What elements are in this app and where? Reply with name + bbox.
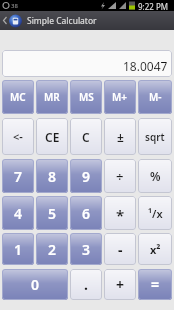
button[interactable]: ¹/x <box>138 196 172 230</box>
staticText: M+ <box>112 90 128 104</box>
button[interactable]: MR <box>36 80 68 114</box>
staticText: 18.0047 <box>123 58 168 74</box>
button[interactable]: 0 <box>2 269 68 300</box>
button[interactable]: Simple Calculator <box>0 11 174 30</box>
button[interactable]: 1 <box>2 233 34 265</box>
staticText: Simple Calculator <box>27 15 97 27</box>
staticText: x² <box>150 242 161 257</box>
button[interactable]: * <box>104 196 136 230</box>
button[interactable]: MS <box>70 80 102 114</box>
staticText: MC <box>10 90 26 104</box>
staticText: 6 <box>82 204 91 223</box>
button[interactable]: 3 <box>70 233 102 265</box>
staticText: <- <box>13 129 23 144</box>
staticText: = <box>151 275 160 294</box>
staticText: 9:22 PM <box>138 1 169 12</box>
staticText: - <box>118 240 123 259</box>
staticText: 0 <box>31 275 40 294</box>
button[interactable]: 2 <box>36 233 68 265</box>
button[interactable]: . <box>70 269 102 300</box>
button[interactable]: CE <box>36 118 68 155</box>
staticText: 9 <box>82 167 91 186</box>
staticText: MR <box>44 90 60 104</box>
staticText: ± <box>117 129 124 145</box>
staticText: * <box>116 205 125 225</box>
button[interactable]: 8 <box>36 159 68 193</box>
staticText: 38 <box>11 2 18 10</box>
staticText: . <box>84 275 88 294</box>
staticText: sqrt <box>145 130 165 144</box>
button[interactable]: ÷ <box>104 159 136 193</box>
button[interactable]: M- <box>138 80 172 114</box>
staticText: 1 <box>14 240 23 259</box>
staticText: M- <box>149 90 162 104</box>
button[interactable]: - <box>104 233 136 265</box>
button[interactable]: 5 <box>36 196 68 230</box>
button[interactable]: 9 <box>70 159 102 193</box>
staticText: 8 <box>48 167 57 186</box>
staticText: % <box>150 168 161 184</box>
staticText: 7 <box>14 167 23 186</box>
button[interactable]: ± <box>104 118 136 155</box>
button[interactable]: sqrt <box>138 118 172 155</box>
staticText: ÷ <box>116 167 124 185</box>
button[interactable]: = <box>138 269 172 300</box>
staticText: CE <box>45 129 60 145</box>
button[interactable]: + <box>104 269 136 300</box>
button[interactable]: C <box>70 118 102 155</box>
button[interactable]: x² <box>138 233 172 265</box>
button[interactable]: M+ <box>104 80 136 114</box>
staticText: MS <box>79 90 94 104</box>
staticText: 2 <box>48 240 57 259</box>
button[interactable]: MC <box>2 80 34 114</box>
button[interactable]: % <box>138 159 172 193</box>
staticText: 4 <box>14 204 23 223</box>
button[interactable]: 4 <box>2 196 34 230</box>
staticText: 3 <box>82 240 91 259</box>
staticText: C <box>82 129 90 145</box>
button[interactable]: 6 <box>70 196 102 230</box>
button[interactable]: 7 <box>2 159 34 193</box>
button[interactable]: <- <box>2 118 34 155</box>
staticText: 5 <box>48 204 57 223</box>
button[interactable]: 18.0047 <box>2 50 172 77</box>
staticText: + <box>116 275 125 294</box>
staticText: ¹/x <box>148 206 163 221</box>
